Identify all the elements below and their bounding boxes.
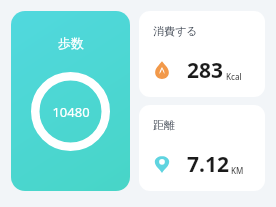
staticText: 消費する xyxy=(153,24,198,38)
other: Distance xyxy=(153,155,171,173)
staticText: 283 xyxy=(187,56,224,85)
staticText: 10480 xyxy=(52,103,90,121)
staticText: 距離 xyxy=(153,118,175,132)
other: Calories burned xyxy=(153,61,171,79)
button[interactable]: 距離 xyxy=(139,105,265,191)
staticText: KM xyxy=(231,165,244,176)
staticText: Kcal xyxy=(226,71,242,82)
button[interactable]: 歩数 xyxy=(11,11,130,191)
staticText: 7.12 xyxy=(187,150,229,179)
button[interactable]: 消費する xyxy=(139,11,265,97)
staticText: 歩数 xyxy=(58,35,84,51)
